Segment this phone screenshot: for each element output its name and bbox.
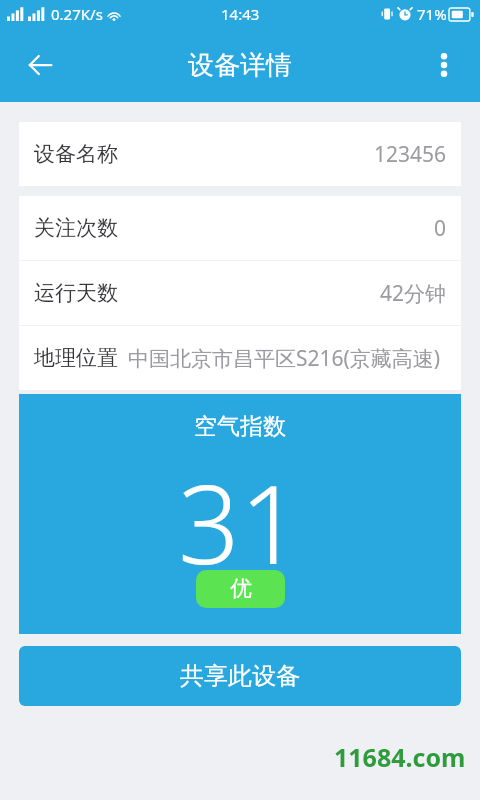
staticText: 42分钟: [128, 279, 446, 308]
button[interactable]: Back: [8, 33, 72, 97]
staticText: 地理位置: [34, 345, 118, 371]
staticText: 0: [128, 214, 446, 243]
staticText: 0.27K/s: [51, 4, 103, 24]
staticText: 123456: [128, 140, 446, 169]
staticText: 关注次数: [34, 215, 118, 241]
staticText: 31: [178, 449, 302, 596]
staticText: 11684.com: [334, 740, 466, 774]
button[interactable]: More options: [416, 37, 472, 93]
staticText: 空气指数: [194, 412, 286, 441]
staticText: 设备详情: [188, 49, 292, 82]
staticText: 71%: [417, 4, 447, 24]
staticText: 优: [230, 575, 252, 603]
button[interactable]: 运行天数: [19, 261, 461, 325]
staticText: 运行天数: [34, 280, 118, 306]
staticText: 设备名称: [34, 141, 118, 167]
staticText: 共享此设备: [180, 661, 300, 691]
button[interactable]: 关注次数: [19, 196, 461, 260]
staticText: 中国北京市昌平区S216(京藏高速): [128, 344, 446, 373]
button[interactable]: 地理位置: [19, 326, 461, 390]
staticText: 14:43: [221, 4, 260, 24]
button[interactable]: 空气指数: [19, 394, 461, 634]
button[interactable]: 设备名称: [19, 122, 461, 186]
button[interactable]: 共享此设备: [19, 646, 461, 706]
